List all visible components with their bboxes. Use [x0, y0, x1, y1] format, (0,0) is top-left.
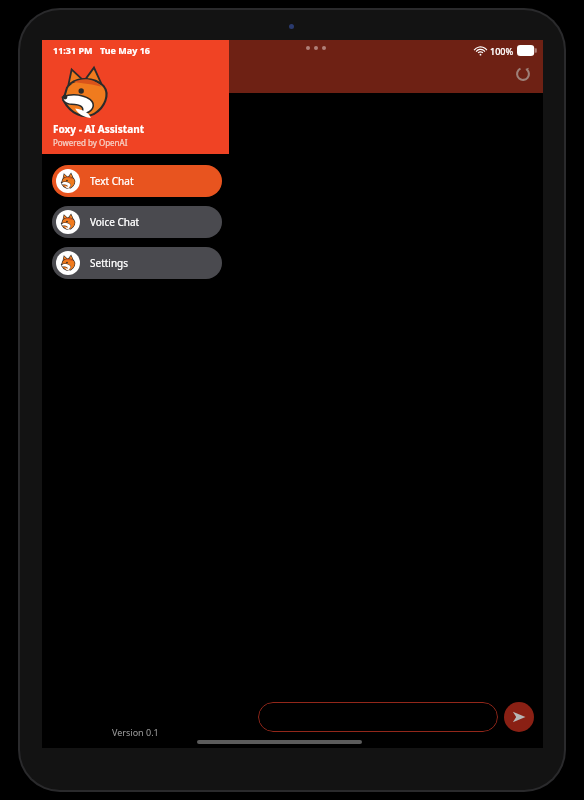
button[interactable]: Voice Chat [52, 206, 222, 238]
staticText: Text Chat [90, 174, 134, 188]
staticText: Settings [90, 256, 129, 270]
staticText: 11:31 PM [53, 44, 93, 56]
button[interactable]: Text Chat [52, 165, 222, 197]
staticText: Voice Chat [90, 215, 140, 229]
button[interactable]: Send [504, 702, 534, 732]
staticText: Foxy - AI Assistant [53, 122, 144, 136]
staticText: Powered by OpenAI [53, 137, 128, 148]
staticText: Tue May 16 [100, 44, 150, 56]
staticText: Version 0.1 [112, 726, 159, 738]
button[interactable]: Settings [52, 247, 222, 279]
staticText: 100% [490, 45, 514, 57]
button[interactable]: Reload [511, 62, 535, 86]
button[interactable]: Message input [258, 702, 498, 732]
